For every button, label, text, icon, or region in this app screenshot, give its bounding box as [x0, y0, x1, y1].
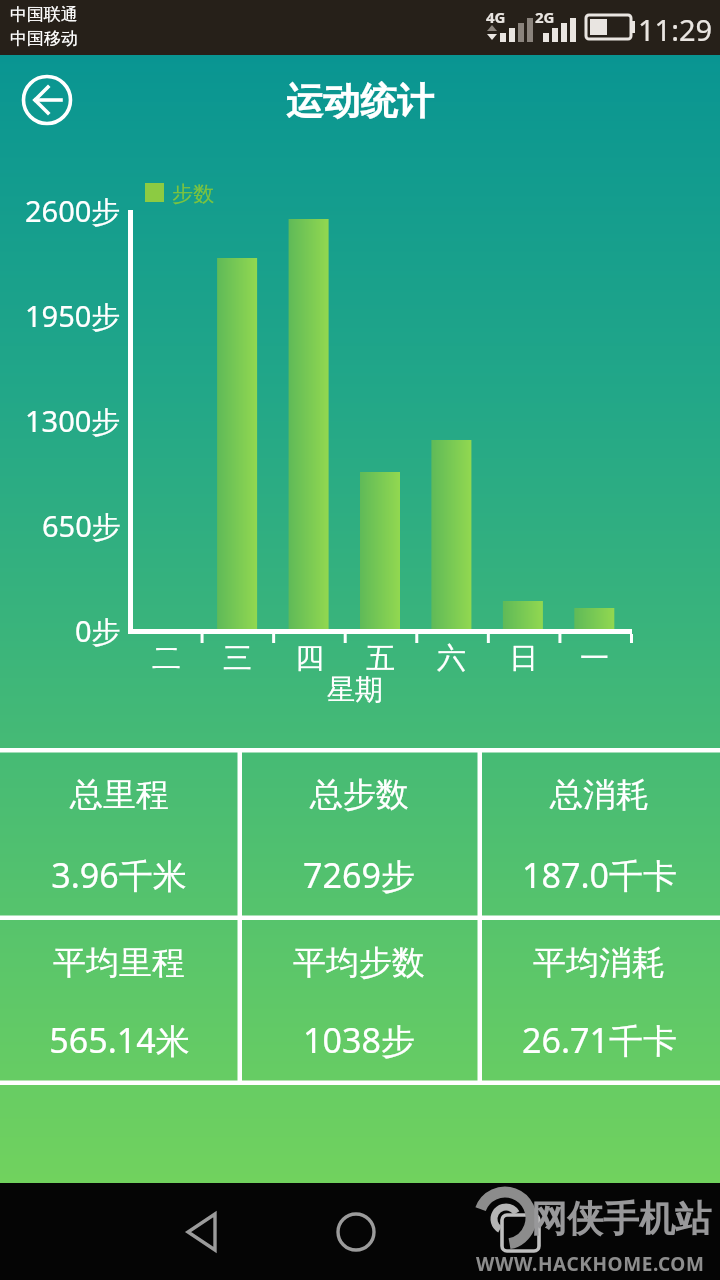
- button[interactable]: [160, 1192, 245, 1272]
- staticText: 平均里程: [53, 942, 185, 984]
- staticText: 中国移动: [10, 28, 78, 49]
- staticText: 26.71千卡: [522, 1017, 677, 1063]
- staticText: 11:29: [638, 10, 713, 49]
- button[interactable]: [315, 1192, 400, 1272]
- staticText: 187.0千卡: [522, 852, 677, 898]
- staticText: 中国联通: [10, 4, 78, 25]
- staticText: 网侠手机站: [531, 1196, 711, 1241]
- staticText: 二: [152, 640, 181, 677]
- button[interactable]: [470, 1192, 555, 1272]
- button[interactable]: [240, 752, 478, 916]
- staticText: 平均步数: [293, 942, 425, 984]
- staticText: 运动统计: [286, 78, 434, 125]
- staticText: 一: [580, 640, 609, 677]
- staticText: 三: [223, 640, 252, 677]
- staticText: WWW.HACKHOME.COM: [476, 1251, 705, 1277]
- staticText: 星期: [327, 672, 383, 707]
- staticText: 4G: [486, 7, 506, 27]
- staticText: 总里程: [70, 774, 169, 816]
- staticText: 650步: [42, 506, 121, 546]
- button[interactable]: [0, 752, 238, 916]
- staticText: 六: [437, 640, 466, 677]
- button[interactable]: [480, 752, 718, 916]
- staticText: 日: [509, 640, 538, 677]
- staticText: 3.96千米: [51, 852, 187, 898]
- staticText: 2600步: [25, 191, 121, 231]
- staticText: 五: [366, 640, 395, 677]
- staticText: 7269步: [303, 852, 415, 898]
- staticText: 565.14米: [49, 1017, 190, 1063]
- staticText: 1300步: [25, 401, 121, 441]
- staticText: 0步: [75, 611, 121, 651]
- button[interactable]: [15, 68, 79, 132]
- staticText: 步数: [172, 181, 214, 207]
- staticText: 1038步: [303, 1017, 415, 1063]
- staticText: 总消耗: [550, 774, 649, 816]
- staticText: 平均消耗: [533, 942, 665, 984]
- staticText: 总步数: [310, 774, 409, 816]
- staticText: 2G: [535, 7, 555, 27]
- staticText: 四: [295, 640, 324, 677]
- staticText: 1950步: [25, 296, 121, 336]
